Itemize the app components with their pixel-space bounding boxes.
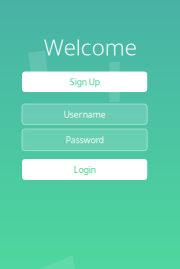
staticText: Password — [66, 134, 104, 146]
staticText: Username — [64, 108, 106, 120]
staticText: Sign Up — [70, 76, 100, 88]
staticText: Login — [74, 163, 96, 175]
button[interactable]: Sign Up — [22, 71, 147, 92]
staticText: Welcome — [43, 31, 136, 62]
button[interactable]: Login — [22, 159, 147, 180]
button[interactable]: Username — [22, 104, 147, 124]
button[interactable]: Password — [22, 129, 147, 151]
